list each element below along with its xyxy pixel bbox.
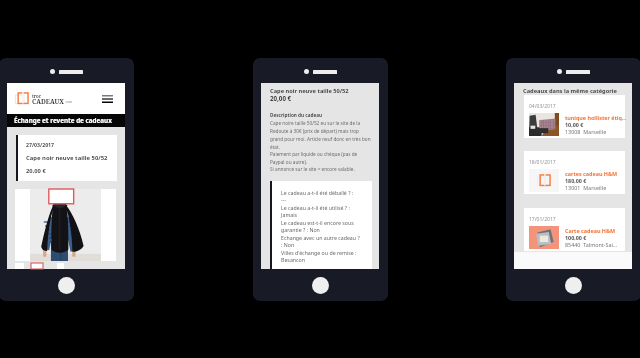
staticText: Echange avec un autre cadeau ? : Non bbox=[281, 234, 360, 249]
button[interactable] bbox=[31, 263, 43, 269]
staticText: cartes cadeau H&M bbox=[565, 170, 618, 177]
staticText: 13008 Marseille bbox=[565, 128, 607, 135]
staticText: 10,00 € bbox=[565, 121, 584, 128]
staticText: Cape noire taille 50/52 eu sur le site d… bbox=[270, 120, 372, 151]
staticText: Le cadeau a-t-il été utilisé ? : Jamais bbox=[281, 204, 350, 219]
button[interactable]: 27/03/2017 bbox=[16, 135, 117, 181]
staticText: 17/01/2017 bbox=[529, 216, 556, 223]
staticText: 85440 Talmont-Sai... bbox=[565, 241, 618, 248]
staticText: troc bbox=[32, 93, 42, 99]
button[interactable]: Menu bbox=[99, 91, 115, 107]
staticText: Cadeaux dans la même catégorie bbox=[523, 87, 617, 95]
staticText: 27/03/2017 bbox=[26, 141, 55, 148]
button[interactable]: 18/01/2017 bbox=[524, 151, 625, 194]
button[interactable]: 17/01/2017 bbox=[524, 208, 625, 251]
staticText: Carte cadeau H&M bbox=[565, 227, 616, 234]
staticText: Villes d'échange ou de remise : Besancon bbox=[281, 249, 368, 264]
button[interactable]: 04/03/2017 bbox=[524, 95, 625, 138]
staticText: 100,00 € bbox=[565, 234, 587, 241]
staticText: 04/03/2017 bbox=[529, 103, 556, 110]
staticText: 180,00 € bbox=[565, 177, 587, 184]
staticText: Échange et revente de cadeaux bbox=[14, 116, 112, 125]
staticText: Si annonce sur le site = encore valable. bbox=[270, 166, 355, 172]
staticText: Cape noir neuve taille 50/52 bbox=[270, 87, 349, 95]
staticText: Le cadeau a-t-il été déballé ? : --- bbox=[281, 189, 354, 204]
staticText: Description du cadeau bbox=[270, 112, 323, 118]
staticText: .com bbox=[65, 100, 73, 104]
staticText: 20,00 € bbox=[26, 167, 46, 175]
staticText: CADEAUX bbox=[32, 97, 64, 106]
staticText: 18/01/2017 bbox=[529, 159, 556, 166]
staticText: Cape noir neuve taille 50/52 bbox=[26, 154, 108, 162]
staticText: 20,00 € bbox=[270, 94, 292, 102]
staticText: Le cadeau est-t-il encore sous garantie … bbox=[281, 219, 368, 234]
staticText: tunique hollister étiq... bbox=[565, 114, 627, 121]
staticText: Paiement par liquide ou chèque (pas de P… bbox=[270, 151, 372, 166]
button[interactable] bbox=[7, 189, 125, 261]
staticText: 13001 Marseille bbox=[565, 184, 607, 191]
